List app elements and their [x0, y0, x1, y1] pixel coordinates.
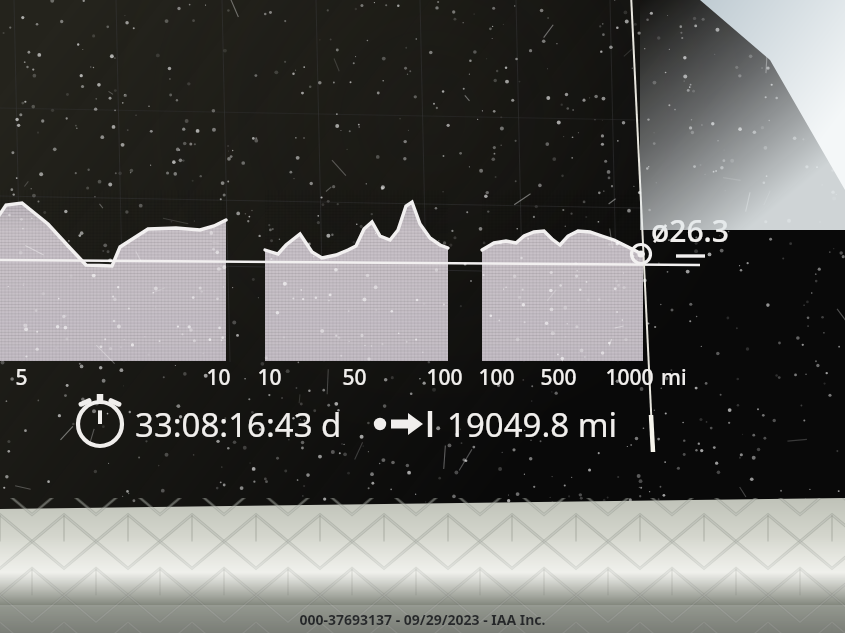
button[interactable]: Vehicle trip consumption chart: [0, 0, 845, 633]
